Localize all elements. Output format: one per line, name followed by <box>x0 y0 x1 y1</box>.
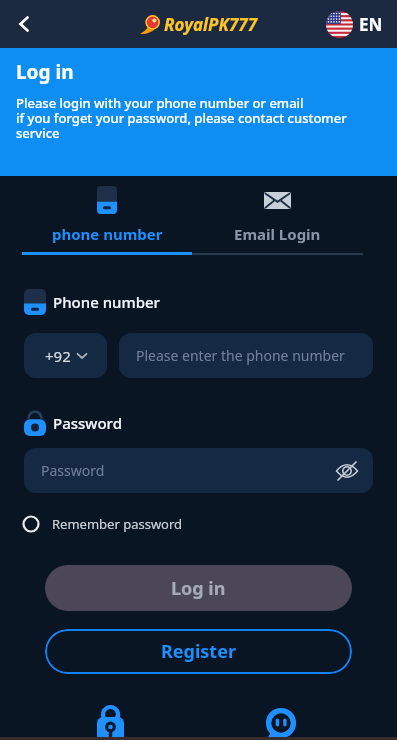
button[interactable] <box>97 700 124 740</box>
button[interactable] <box>266 700 296 740</box>
staticText: Email Login <box>234 224 321 244</box>
button[interactable]: EN <box>326 11 383 38</box>
staticText: EN <box>359 13 383 36</box>
button[interactable]: Remember password <box>22 515 183 533</box>
staticText: phone number <box>52 224 163 244</box>
staticText: Please login with your phone number or e… <box>16 94 347 141</box>
staticText: Password <box>41 461 105 480</box>
staticText: Password <box>53 413 122 433</box>
button[interactable]: phone number <box>22 186 192 244</box>
button[interactable]: Register <box>45 629 352 674</box>
staticText: Log in <box>171 576 226 601</box>
staticText: Phone number <box>53 292 160 312</box>
button[interactable]: Email Login <box>192 186 363 244</box>
staticText: Log in <box>16 59 74 85</box>
button[interactable]: Password <box>24 448 373 493</box>
button[interactable]: Please enter the phone number <box>119 333 373 378</box>
staticText: +92 <box>45 346 71 366</box>
button[interactable]: Log in <box>45 565 352 611</box>
staticText: RoyalPK777 <box>164 13 258 36</box>
button[interactable]: +92 <box>24 333 107 378</box>
staticText: Remember password <box>52 515 183 533</box>
button[interactable] <box>8 8 40 40</box>
staticText: Register <box>161 639 236 664</box>
staticText: Please enter the phone number <box>136 346 345 365</box>
